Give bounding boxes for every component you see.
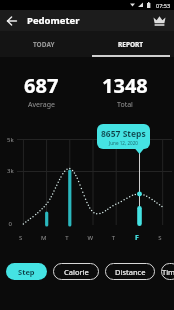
staticText: 07:53 — [156, 2, 171, 9]
button[interactable]: Calorie — [53, 263, 99, 280]
staticText: TODAY — [33, 40, 55, 49]
button[interactable]: Step — [6, 263, 47, 280]
button[interactable]: Time — [161, 263, 174, 280]
staticText: 687 — [24, 72, 59, 99]
staticText: Step — [18, 267, 35, 277]
button[interactable]: REPORT — [87, 31, 174, 57]
staticText: Average — [28, 100, 55, 110]
staticText: Time — [162, 267, 174, 277]
button[interactable] — [144, 10, 174, 31]
staticText: 8657 Steps — [101, 128, 146, 140]
button[interactable]: TODAY — [0, 31, 87, 57]
staticText: June 12, 2020 — [109, 140, 138, 146]
staticText: Pedometer — [27, 14, 80, 27]
staticText: Distance — [115, 267, 146, 277]
staticText: 1348 — [102, 72, 148, 99]
button[interactable] — [0, 10, 24, 31]
button[interactable]: Distance — [105, 263, 155, 280]
staticText: REPORT — [118, 40, 144, 49]
staticText: Total — [117, 100, 133, 110]
staticText: Calorie — [64, 267, 89, 277]
